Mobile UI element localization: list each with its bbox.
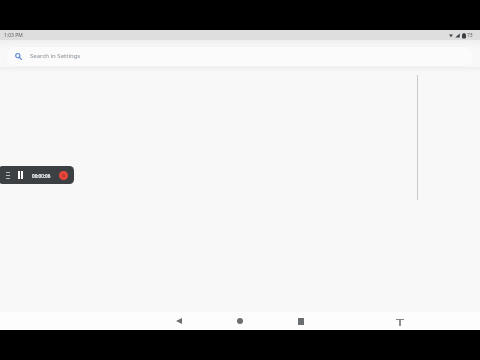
button[interactable]: Pause	[14, 166, 26, 184]
button[interactable]: Move handle	[3, 166, 13, 184]
button[interactable]: Stop recording	[54, 166, 72, 184]
button[interactable]: Back	[170, 312, 188, 330]
staticText: 00:00:06	[32, 173, 51, 179]
button[interactable]: Home	[231, 312, 249, 330]
button[interactable]: Recent apps	[292, 312, 310, 330]
staticText: Search in Settings	[30, 52, 81, 60]
button[interactable]: Switch keyboard	[391, 313, 409, 331]
staticText: 1:03 PM	[4, 32, 23, 39]
button[interactable]: Search in Settings	[5, 46, 475, 67]
staticText: 73	[467, 32, 473, 39]
